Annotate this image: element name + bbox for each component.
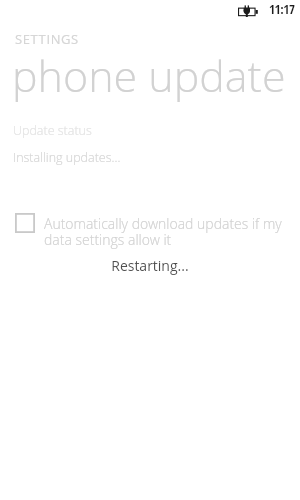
staticText: SETTINGS xyxy=(15,30,79,48)
staticText: Restarting... xyxy=(0,256,300,275)
staticText: Update status xyxy=(13,122,92,139)
staticText: Installing updates... xyxy=(13,149,121,166)
staticText: Automatically download updates if my dat… xyxy=(44,214,286,249)
button[interactable]: Automatically download updates if my dat… xyxy=(15,214,286,249)
staticText: 11:17 xyxy=(269,0,295,18)
other: Battery charging xyxy=(238,5,258,18)
staticText: phone update xyxy=(12,46,286,105)
